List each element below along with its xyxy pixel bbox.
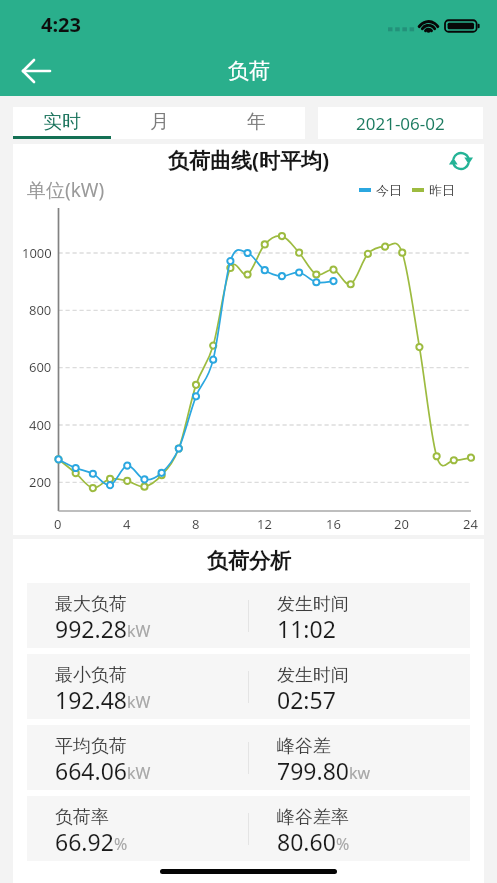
staticText: 1000 (22, 244, 52, 262)
staticText: 负荷分析 (207, 548, 291, 574)
staticText: 799.80 (277, 755, 349, 786)
staticText: 80.60 (277, 826, 336, 857)
staticText: 600 (29, 358, 52, 376)
staticText: 200 (29, 473, 52, 491)
staticText: 今日 (376, 182, 402, 198)
staticText: 400 (29, 416, 52, 434)
button[interactable]: 月 (111, 107, 208, 139)
button[interactable]: 平均负荷 (27, 725, 470, 790)
staticText: 2021-06-02 (356, 112, 445, 135)
button[interactable]: 最小负荷 (27, 654, 470, 719)
button[interactable]: Back (14, 49, 58, 93)
staticText: 664.06 (55, 755, 127, 786)
staticText: 最小负荷 (55, 664, 127, 687)
button[interactable]: 负荷率 (27, 796, 470, 861)
staticText: kW (127, 762, 151, 784)
staticText: 16 (326, 515, 341, 533)
staticText: 单位(kW) (27, 177, 105, 202)
staticText: 24 (463, 515, 478, 533)
staticText: % (336, 833, 350, 855)
staticText: kW (127, 620, 151, 642)
staticText: 4 (123, 515, 131, 533)
button[interactable]: 实时 (13, 107, 111, 139)
staticText: 年 (247, 110, 266, 134)
staticText: 02:57 (277, 684, 336, 715)
staticText: % (114, 833, 128, 855)
staticText: 平均负荷 (55, 735, 127, 758)
staticText: 峰谷差 (277, 735, 331, 758)
staticText: 实时 (43, 110, 81, 134)
staticText: 发生时间 (277, 593, 349, 616)
staticText: 11:02 (277, 613, 336, 644)
staticText: kW (127, 691, 151, 713)
staticText: 负荷率 (55, 806, 109, 829)
staticText: 20 (394, 515, 409, 533)
staticText: 800 (29, 301, 52, 319)
staticText: kw (349, 762, 371, 784)
staticText: 月 (150, 110, 169, 134)
staticText: 发生时间 (277, 664, 349, 687)
staticText: 192.48 (55, 684, 127, 715)
button[interactable]: 2021-06-02 (318, 107, 483, 139)
staticText: 负荷 (228, 58, 270, 84)
button[interactable]: 年 (208, 107, 305, 139)
button[interactable]: Refresh (449, 149, 473, 173)
staticText: 4:23 (41, 11, 81, 38)
staticText: 992.28 (55, 613, 127, 644)
staticText: 66.92 (55, 826, 114, 857)
button[interactable]: 最大负荷 (27, 583, 470, 648)
staticText: 负荷曲线(时平均) (168, 146, 330, 175)
staticText: 最大负荷 (55, 593, 127, 616)
staticText: 12 (257, 515, 272, 533)
staticText: 峰谷差率 (277, 806, 349, 829)
staticText: 8 (192, 515, 200, 533)
staticText: 昨日 (429, 182, 455, 198)
staticText: 0 (54, 515, 62, 533)
